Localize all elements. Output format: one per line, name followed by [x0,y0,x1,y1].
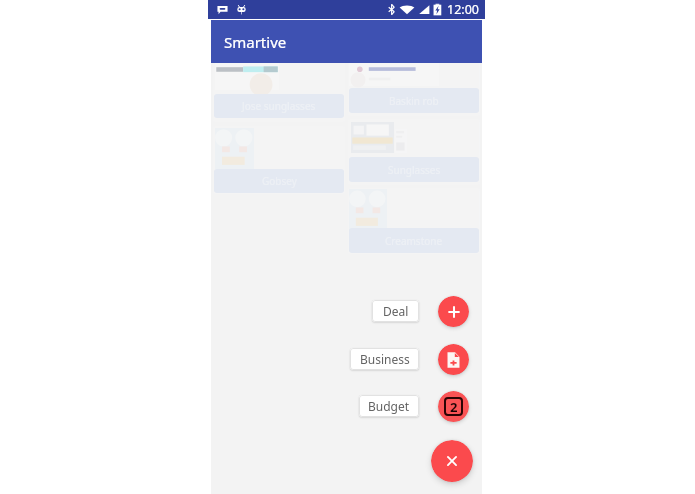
button[interactable]: Deal [438,296,469,327]
staticText: 12:00 [447,1,479,18]
staticText: Smartive [224,32,287,52]
button[interactable]: Deal [372,300,419,322]
staticText: Gobsey [262,174,297,188]
staticText: Creamstone [385,234,443,248]
staticText: Baskin rob [389,94,439,108]
staticText: Budget [368,398,410,414]
staticText: Jose sunglasses [242,99,316,113]
button[interactable]: Budget [359,395,419,417]
button[interactable]: Budget [438,391,469,422]
staticText: Sunglasses [388,163,441,177]
staticText: Deal [383,303,409,319]
button[interactable]: Business [438,344,469,375]
button[interactable]: Close actions [431,440,473,482]
staticText: 2 [450,398,458,416]
staticText: Business [360,351,410,367]
button[interactable]: Business [350,348,419,370]
